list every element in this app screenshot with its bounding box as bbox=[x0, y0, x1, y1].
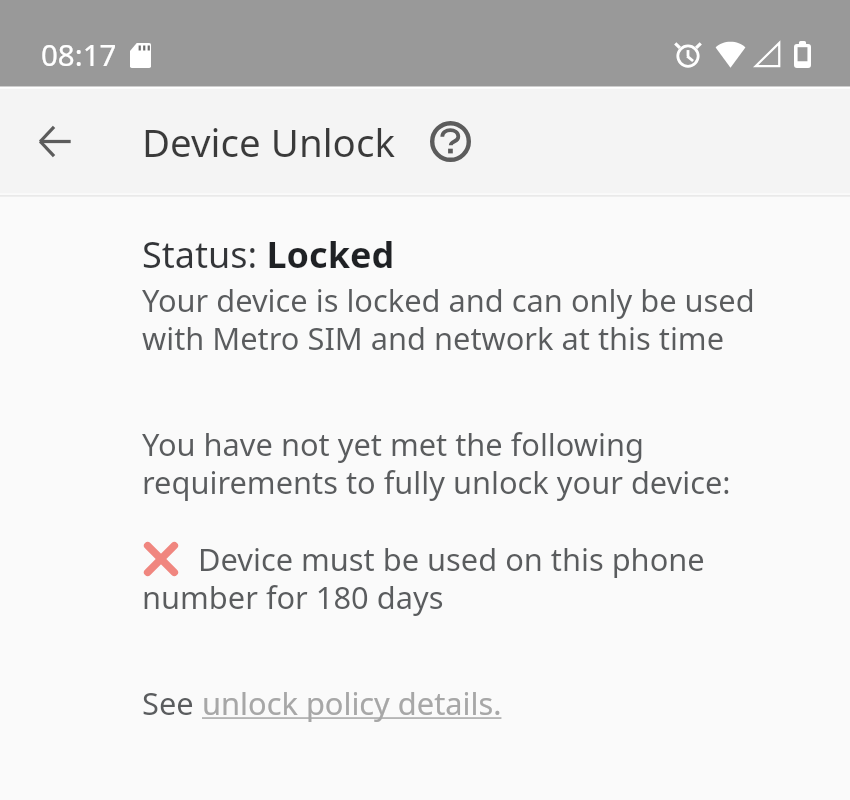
staticText: See bbox=[142, 682, 202, 724]
staticText: unlock policy details. bbox=[202, 682, 502, 724]
staticText: Device must be used on this phone number… bbox=[142, 538, 812, 618]
button[interactable]: Help bbox=[425, 116, 475, 166]
staticText: You have not yet met the following requi… bbox=[142, 423, 812, 503]
staticText: Device Unlock bbox=[142, 116, 395, 168]
button[interactable]: unlock policy details. bbox=[202, 682, 502, 724]
button[interactable]: Back bbox=[23, 109, 87, 173]
staticText: 08:17 bbox=[41, 34, 117, 74]
staticText: Your device is locked and can only be us… bbox=[142, 279, 812, 359]
staticText: Status: Locked bbox=[142, 230, 395, 279]
